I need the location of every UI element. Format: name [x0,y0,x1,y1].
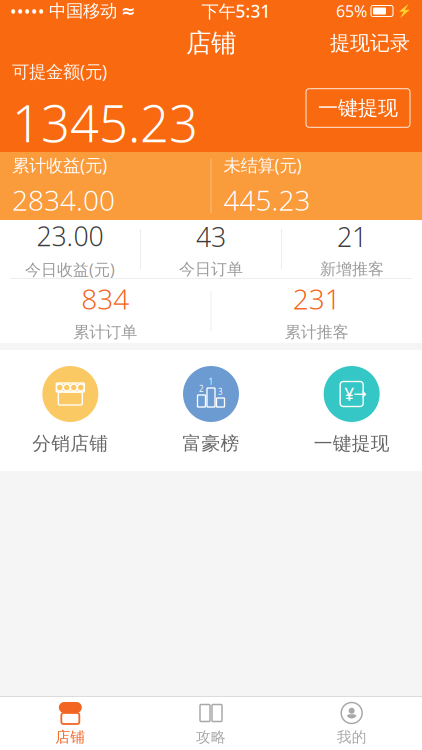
button[interactable]: 一键提现 [306,89,410,127]
staticText: ¥ [344,382,354,405]
staticText: 未结算(元) [223,153,301,176]
button[interactable]: 分销店铺 [0,366,141,455]
staticText: ≈ [121,1,136,21]
staticText: 累计订单 [73,322,137,342]
staticText: 231 [293,280,341,317]
button[interactable]: 2 [141,366,281,455]
staticText: 23.00 [36,218,103,254]
staticText: 834 [81,280,129,317]
staticText: 一键提现 [314,432,390,455]
button[interactable]: 店铺 [0,701,141,746]
staticText: 今日订单 [179,259,243,279]
staticText: 富豪榜 [182,432,239,455]
staticText: 3 [218,386,223,397]
staticText: 21 [337,219,367,254]
staticText: ••••• [10,0,45,22]
staticText: 一键提现 [318,96,398,120]
staticText: 中国移动 [49,0,117,22]
staticText: 提现记录 [330,31,410,55]
staticText: 2 [199,383,204,394]
staticText: 累计收益(元) [12,153,107,176]
staticText: 43 [196,219,226,254]
staticText: 下午5:31 [201,0,270,22]
staticText: 今日收益(元) [25,259,115,280]
staticText: 2834.00 [12,181,115,219]
staticText: 店铺 [186,27,236,58]
staticText: 1 [208,376,213,387]
button[interactable]: 攻略 [141,701,281,746]
staticText: 我的 [337,728,367,746]
staticText: 分销店铺 [32,432,108,455]
staticText: 累计推客 [285,322,349,342]
button[interactable]: 提现记录 [318,23,422,63]
staticText: 可提金额(元) [12,60,107,83]
staticText: 店铺 [55,728,85,746]
staticText: 1345.23 [12,89,198,156]
staticText: 65% [336,0,367,22]
staticText: 攻略 [196,728,226,746]
button[interactable]: 我的 [281,701,422,746]
staticText: ⚡ [397,4,412,18]
staticText: 445.23 [223,181,310,219]
staticText: → [353,385,366,403]
button[interactable]: ¥ [281,366,422,455]
staticText: 新增推客 [320,259,384,279]
